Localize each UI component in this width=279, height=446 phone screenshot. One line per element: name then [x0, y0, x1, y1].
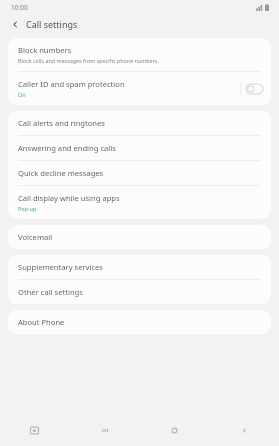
- staticText: Supplementary services: [18, 262, 103, 272]
- staticText: Call alerts and ringtones: [18, 118, 105, 128]
- staticText: On: [18, 91, 26, 98]
- staticText: 10:00: [11, 3, 28, 12]
- button[interactable]: Back: [8, 17, 22, 31]
- button[interactable]: Supplementary services: [8, 255, 271, 279]
- button[interactable]: Caller ID and spam protection: [8, 72, 271, 105]
- button[interactable]: About Phone: [8, 310, 271, 334]
- staticText: Other call settings: [18, 287, 83, 297]
- staticText: Pop-up: [18, 205, 37, 212]
- staticText: Call display while using apps: [18, 193, 120, 203]
- button[interactable]: Voicemail: [8, 225, 271, 249]
- staticText: Voicemail: [18, 232, 53, 242]
- button[interactable]: Block numbers: [8, 38, 271, 71]
- button[interactable]: Home: [139, 415, 209, 446]
- button[interactable]: Quick decline messages: [8, 161, 271, 185]
- button[interactable]: Other call settings: [8, 280, 271, 304]
- staticText: Call settings: [26, 18, 78, 30]
- button[interactable]: Recent apps: [69, 415, 139, 446]
- button[interactable]: Hide keyboard: [0, 415, 69, 446]
- staticText: Quick decline messages: [18, 168, 104, 178]
- button[interactable]: Call alerts and ringtones: [8, 111, 271, 135]
- staticText: About Phone: [18, 317, 65, 327]
- button[interactable]: Answering and ending calls: [8, 136, 271, 160]
- staticText: Caller ID and spam protection: [18, 79, 125, 89]
- staticText: Block calls and messages from specific p…: [18, 57, 159, 64]
- button[interactable]: Call display while using apps: [8, 186, 271, 219]
- staticText: Answering and ending calls: [18, 143, 116, 153]
- staticText: Block numbers: [18, 45, 72, 55]
- button[interactable]: Caller ID and spam protection toggle: [246, 84, 263, 94]
